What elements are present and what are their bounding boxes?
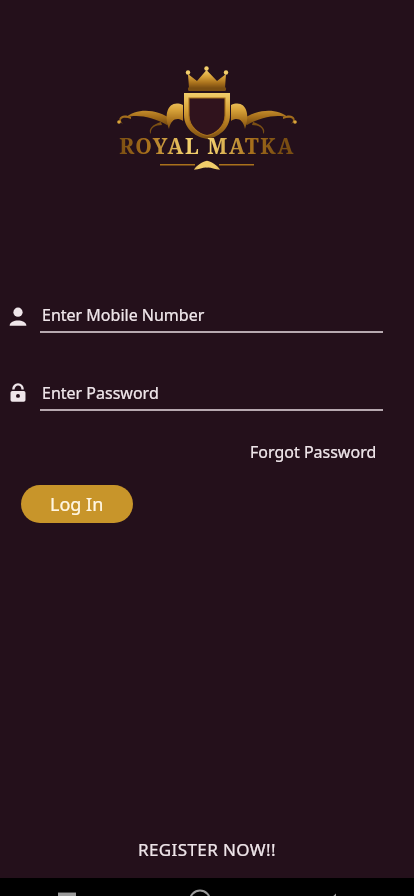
button[interactable]: Log In <box>21 485 133 523</box>
staticText: ROYAL MATKA <box>119 132 295 161</box>
staticText: Log In <box>50 492 104 517</box>
other: Mobile number <box>7 305 29 329</box>
button[interactable]: Password <box>0 375 414 421</box>
staticText: REGISTER NOW!! <box>138 838 276 861</box>
button[interactable]: Mobile number <box>0 297 414 343</box>
staticText: Enter Password <box>42 382 159 404</box>
button[interactable]: REGISTER NOW!! <box>138 838 276 861</box>
staticText: Enter Mobile Number <box>42 304 205 326</box>
other: Password <box>7 381 29 405</box>
button[interactable]: Forgot Password <box>250 441 377 463</box>
staticText: Forgot Password <box>250 441 377 463</box>
